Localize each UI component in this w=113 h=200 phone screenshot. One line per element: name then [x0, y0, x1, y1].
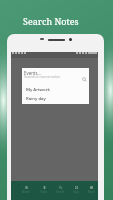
staticText: Events...: [24, 70, 42, 76]
staticText: Search Notes: [23, 15, 79, 27]
button[interactable]: Rainy day: [26, 95, 46, 101]
staticText: Tasks: [40, 190, 48, 194]
button[interactable]: Tags: [68, 181, 84, 200]
button[interactable]: Tasks: [36, 181, 52, 200]
button[interactable]: More: [83, 181, 99, 200]
staticText: Notes: [22, 190, 30, 194]
staticText: Tags: [73, 190, 79, 194]
staticText: Search: [56, 190, 65, 194]
button[interactable]: Search: [82, 77, 87, 82]
staticText: Search in some notes: [24, 74, 61, 79]
staticText: More: [88, 190, 95, 194]
button[interactable]: Search: [52, 181, 68, 200]
button[interactable]: Notes: [18, 181, 34, 200]
button[interactable]: My Artwork: [26, 86, 50, 92]
